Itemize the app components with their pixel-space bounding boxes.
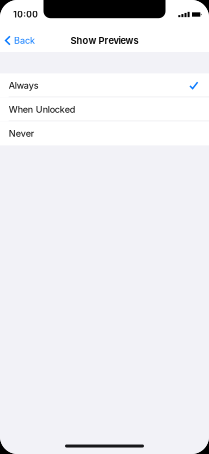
button[interactable]: Never <box>0 121 209 145</box>
button[interactable]: When Unlocked <box>0 97 209 121</box>
staticText: Never <box>9 128 34 139</box>
staticText: Show Previews <box>70 35 138 46</box>
staticText: 10:00 <box>13 9 38 20</box>
staticText: When Unlocked <box>9 104 76 115</box>
button[interactable]: Back <box>0 29 41 52</box>
staticText: Back <box>14 35 35 46</box>
button[interactable]: Always <box>0 73 209 97</box>
staticText: Always <box>9 80 39 91</box>
